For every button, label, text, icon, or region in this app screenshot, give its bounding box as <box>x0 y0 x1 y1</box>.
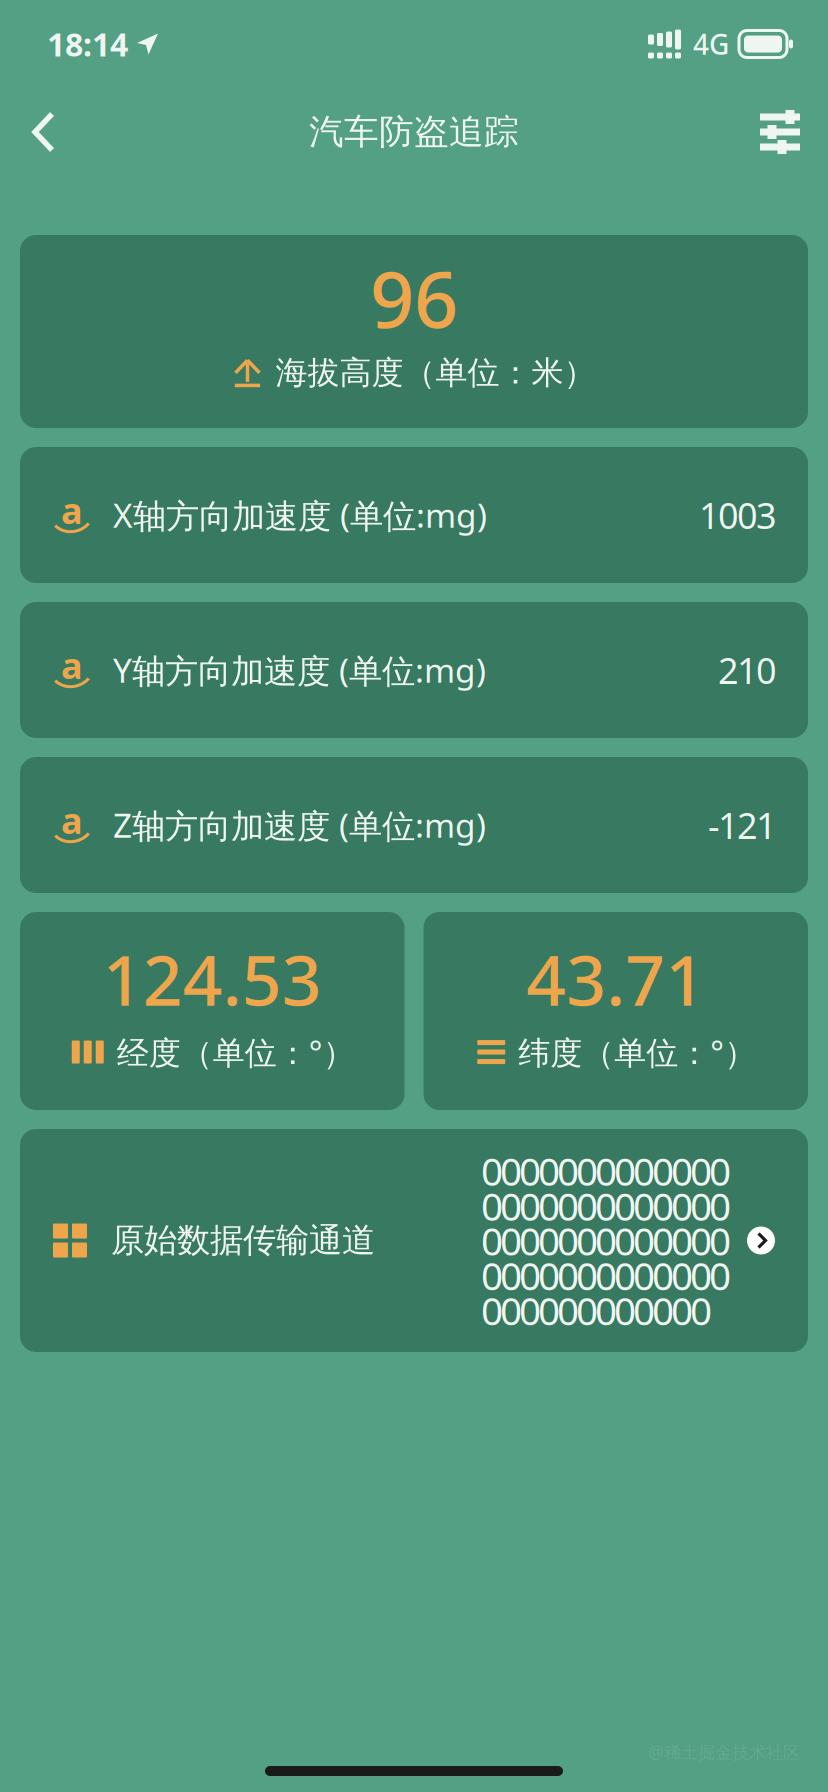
button[interactable]: a <box>20 602 808 738</box>
staticText: 210 <box>718 646 777 694</box>
staticText: 96 <box>370 246 458 349</box>
staticText: a <box>61 641 83 689</box>
staticText: X轴方向加速度 (单位:mg) <box>113 493 487 537</box>
staticText: 4G <box>693 25 729 63</box>
button[interactable]: 43.71 <box>423 912 808 1110</box>
staticText: 0000000000000 <box>481 1180 731 1231</box>
staticText: 0000000000000 <box>481 1250 731 1301</box>
staticText: 1003 <box>699 491 777 539</box>
staticText: 经度（单位：°） <box>117 1031 355 1073</box>
button[interactable]: Settings <box>732 88 828 176</box>
staticText: 纬度（单位：°） <box>518 1031 756 1073</box>
staticText: a <box>61 486 83 534</box>
staticText: Y轴方向加速度 (单位:mg) <box>113 648 486 692</box>
staticText: 0000000000000 <box>481 1145 731 1196</box>
staticText: 海拔高度（单位：米） <box>275 353 595 392</box>
staticText: @稀土掘金技术社区 <box>648 1740 800 1763</box>
staticText: 43.71 <box>526 933 705 1025</box>
staticText: -121 <box>708 801 777 849</box>
staticText: 000000000000 <box>481 1284 712 1336</box>
button[interactable]: Back <box>0 88 79 176</box>
staticText: Z轴方向加速度 (单位:mg) <box>113 803 486 847</box>
staticText: 汽车防盗追踪 <box>309 111 519 153</box>
staticText: 原始数据传输通道 <box>111 1220 375 1261</box>
staticText: 124.53 <box>103 933 322 1025</box>
button[interactable]: 原始数据传输通道 <box>20 1129 808 1352</box>
staticText: 0000000000000 <box>481 1215 731 1266</box>
button[interactable]: 124.53 <box>20 912 404 1110</box>
button[interactable]: a <box>20 447 808 583</box>
staticText: 18:14 <box>47 23 128 65</box>
button[interactable]: a <box>20 757 808 893</box>
staticText: a <box>61 796 83 844</box>
button[interactable]: 96 <box>20 235 808 428</box>
